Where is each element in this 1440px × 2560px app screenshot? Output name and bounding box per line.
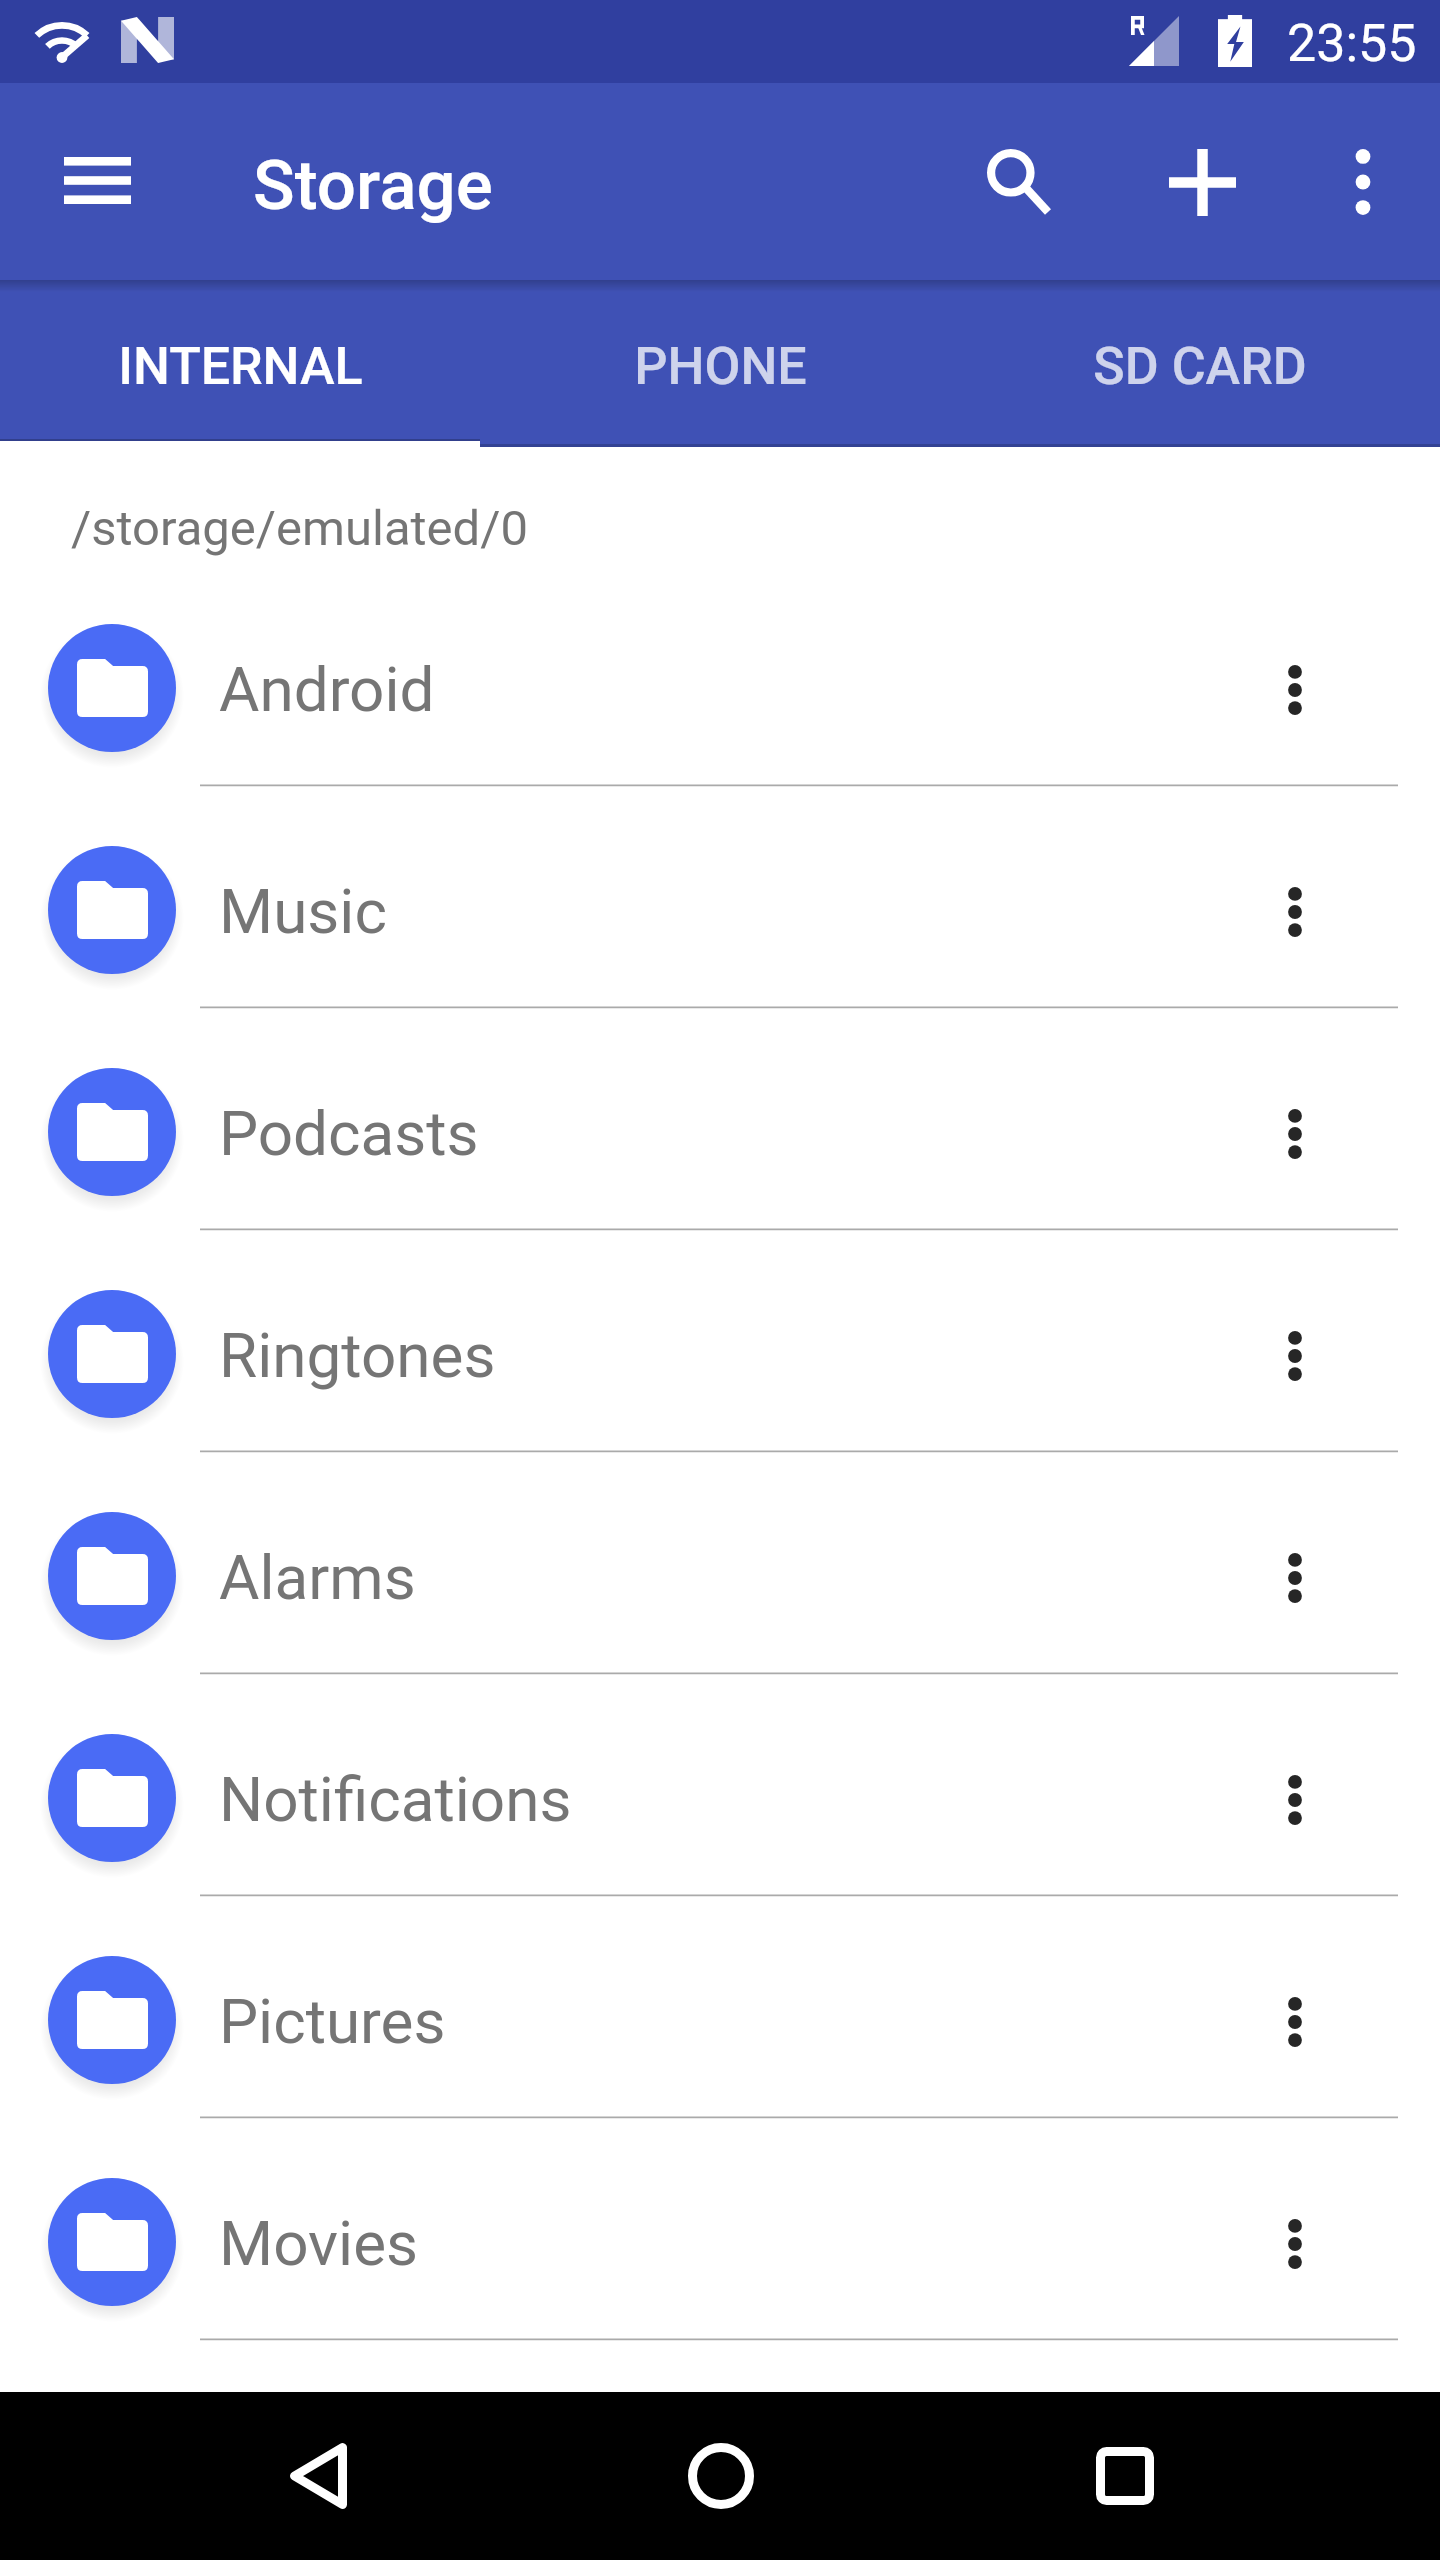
button[interactable]: Android [0,563,1440,785]
button[interactable]: More options for Pictures [1245,1972,1345,2072]
button[interactable]: PHONE [480,280,960,447]
staticText: Movies [219,2207,419,2280]
staticText: Music [219,875,387,948]
button[interactable]: More options for Android [1245,640,1345,740]
staticText: INTERNAL [118,336,363,397]
button[interactable]: Ringtones [0,1229,1440,1451]
staticText: PHONE [634,336,807,397]
button[interactable]: More options for Ringtones [1245,1306,1345,1406]
staticText: Alarms [219,1541,416,1614]
staticText: 23:55 [1287,13,1417,74]
staticText: Ringtones [219,1319,496,1392]
button[interactable]: SD CARD [960,280,1440,447]
button[interactable]: Home [641,2396,801,2556]
staticText: Storage [253,145,493,226]
button[interactable]: Open navigation drawer [32,116,164,248]
button[interactable]: More options for Music [1245,862,1345,962]
staticText: /storage/emulated/0 [71,500,528,557]
button[interactable]: Music [0,785,1440,1007]
button[interactable]: Search [946,98,1078,230]
button[interactable]: More options for Alarms [1245,1528,1345,1628]
staticText: Pictures [219,1985,446,2058]
button[interactable]: Notifications [0,1673,1440,1895]
button[interactable]: More options [1297,116,1429,248]
button[interactable]: Movies [0,2117,1440,2339]
button[interactable]: More options for Movies [1245,2194,1345,2294]
button[interactable]: More options for Podcasts [1245,1084,1345,1184]
staticText: Podcasts [219,1097,479,1170]
button[interactable]: Alarms [0,1451,1440,1673]
button[interactable]: Podcasts [0,1007,1440,1229]
staticText: Android [219,653,435,726]
button[interactable]: Recent apps [1045,2396,1205,2556]
button[interactable]: Back [236,2396,396,2556]
staticText: SD CARD [1093,336,1307,397]
button[interactable]: Pictures [0,1895,1440,2117]
button[interactable]: INTERNAL [0,280,480,447]
staticText: Notifications [219,1763,572,1836]
button[interactable]: Add [1136,116,1268,248]
button[interactable]: More options for Notifications [1245,1750,1345,1850]
